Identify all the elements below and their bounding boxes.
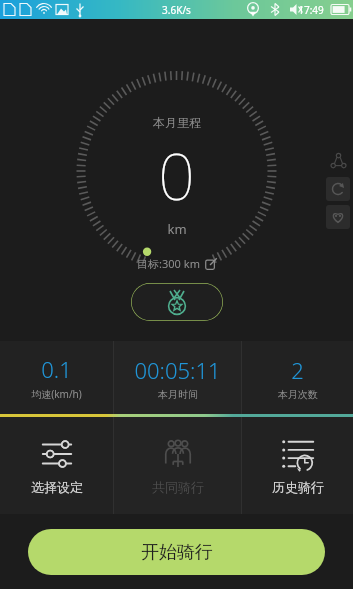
staticText: 目标:300 km bbox=[137, 256, 200, 271]
button[interactable]: 目标:300 km bbox=[133, 252, 221, 275]
staticText: 本月次数 bbox=[278, 388, 318, 401]
button[interactable]: 0.1 bbox=[0, 341, 113, 414]
staticText: 本月时间 bbox=[158, 388, 198, 401]
staticText: 17:49 bbox=[298, 3, 324, 17]
button[interactable]: Achievements bbox=[131, 283, 223, 321]
staticText: 2 bbox=[291, 355, 304, 385]
staticText: 历史骑行 bbox=[272, 479, 324, 495]
button[interactable]: 历史骑行 bbox=[242, 417, 353, 514]
button[interactable]: 选择设定 bbox=[0, 417, 113, 514]
staticText: 均速(km/h) bbox=[31, 387, 82, 401]
staticText: 0 bbox=[158, 132, 195, 219]
button[interactable]: 共同骑行 bbox=[114, 417, 241, 514]
button[interactable]: Connect device bbox=[325, 147, 351, 173]
staticText: 0.1 bbox=[41, 354, 72, 384]
button[interactable]: 2 bbox=[242, 341, 353, 414]
button[interactable]: 00:05:11 bbox=[114, 341, 241, 414]
staticText: 共同骑行 bbox=[152, 479, 204, 495]
staticText: 开始骑行 bbox=[141, 541, 213, 564]
staticText: km bbox=[167, 220, 187, 238]
button[interactable]: Sync bbox=[326, 177, 350, 201]
button[interactable]: Heart rate bbox=[326, 205, 350, 229]
button[interactable]: 开始骑行 bbox=[28, 529, 325, 575]
staticText: 本月里程 bbox=[153, 115, 201, 130]
staticText: 选择设定 bbox=[31, 479, 83, 495]
staticText: 00:05:11 bbox=[134, 355, 221, 385]
staticText: 3.6K/s bbox=[162, 3, 191, 17]
